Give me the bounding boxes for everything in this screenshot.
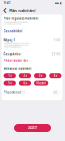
button[interactable]: Back [2,6,8,15]
staticText: 23:00 [51,52,60,56]
button[interactable]: 4x [49,73,61,78]
button[interactable]: 6x [19,81,31,86]
button[interactable]: ULOŽIT [14,124,51,132]
staticText: 2x [23,74,26,77]
staticText: ULOŽIT [27,126,37,130]
staticText: Nastavte si vlastní plán nabírání podle … [4,21,28,25]
button[interactable]: 1x [4,73,16,78]
staticText: Přidat vlastní čas [4,59,28,62]
staticText: 1x [8,74,11,77]
staticText: 4x [54,74,57,77]
staticText: Čas spánku: [4,52,22,56]
staticText: Plán nabírání [9,8,35,13]
staticText: 7:00 [53,38,60,42]
staticText: Nápoje jako kapsle, vařená zrnková káva … [4,42,30,48]
staticText: Frekvence nabírání [4,67,32,70]
button[interactable]: Přidat vlastní čas [4,59,28,62]
button[interactable]: 3x [34,73,46,78]
staticText: 3x [39,74,42,77]
button[interactable]: Reminder toggle [53,91,60,94]
staticText: Vlastní [36,81,46,85]
staticText: Nápoj 1 [4,38,16,42]
staticText: Čas nabírání [4,29,23,33]
staticText: ▪▪ ▮ [55,1,61,4]
staticText: Plán regulace/nabírání [4,17,39,20]
staticText: 9:41 [4,1,11,5]
staticText: Připomenutí [4,91,22,94]
button[interactable]: 2x [19,73,31,78]
button[interactable]: Vlastní [34,81,48,86]
staticText: 6x [23,81,26,85]
staticText: 5x [8,81,11,85]
button[interactable]: 5x [4,81,16,86]
